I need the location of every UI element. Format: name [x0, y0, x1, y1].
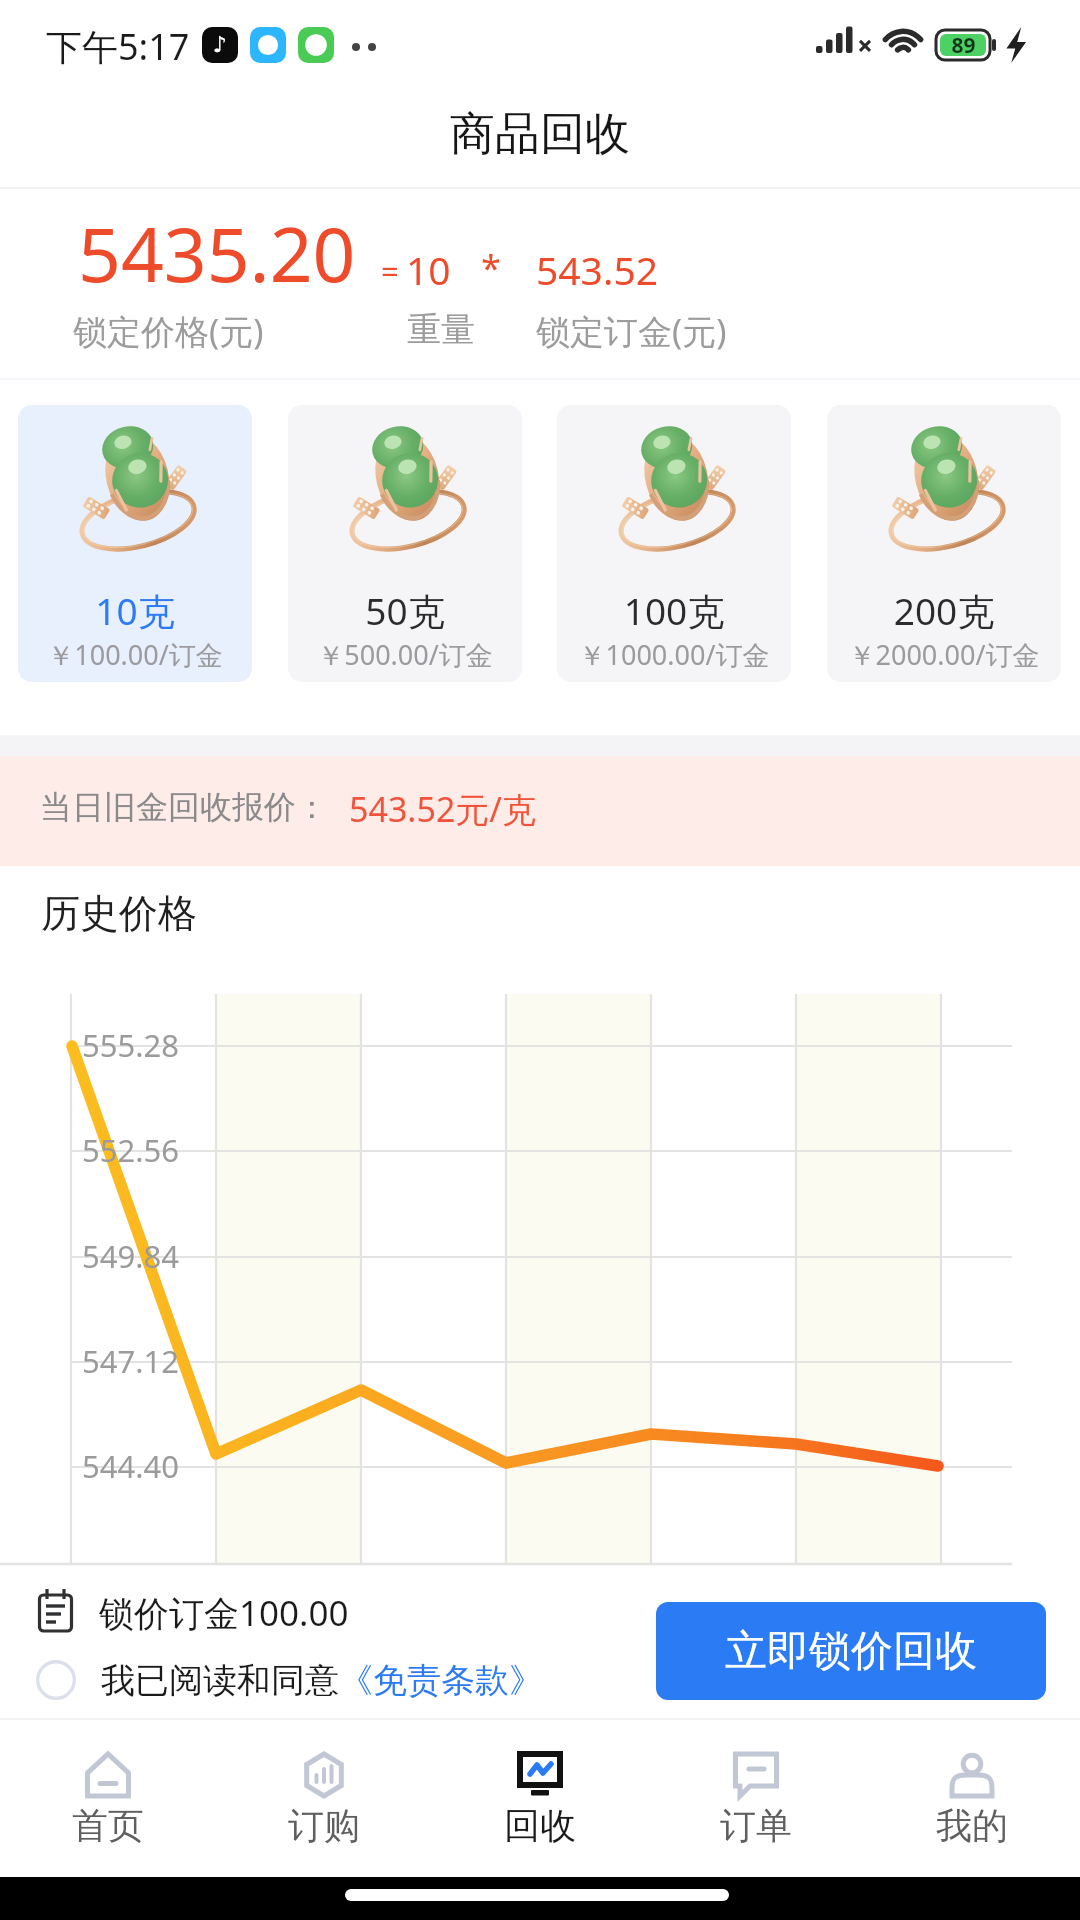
button[interactable]: 100克: [557, 405, 791, 682]
staticText: 552.56: [82, 1129, 179, 1171]
staticText: 547.12: [82, 1340, 179, 1382]
staticText: =: [381, 250, 399, 292]
staticText: *: [481, 243, 501, 292]
staticText: 我已阅读和同意: [101, 1659, 339, 1702]
staticText: ￥100.00/订金: [18, 636, 252, 673]
staticText: 549.84: [82, 1235, 179, 1277]
staticText: 543.52元/克: [349, 786, 536, 832]
staticText: 89: [951, 31, 976, 60]
staticText: ￥500.00/订金: [288, 636, 522, 673]
staticText: 重量: [407, 308, 475, 351]
button[interactable]: 首页: [0, 1720, 216, 1877]
staticText: 我的: [936, 1803, 1008, 1848]
staticText: 543.52: [536, 243, 658, 296]
staticText: 10克: [18, 585, 252, 636]
button[interactable]: 10克: [18, 405, 252, 682]
staticText: 544.40: [82, 1445, 179, 1487]
button[interactable]: 回收: [432, 1720, 648, 1877]
staticText: 订单: [720, 1803, 792, 1848]
staticText: 5435.20: [78, 202, 356, 304]
staticText: 商品回收: [450, 106, 630, 163]
staticText: 回收: [504, 1803, 576, 1848]
staticText: 《免责条款》: [339, 1659, 543, 1702]
staticText: ￥2000.00/订金: [827, 636, 1061, 673]
staticText: 当日旧金回收报价：: [40, 787, 328, 827]
button[interactable]: 订购: [216, 1720, 432, 1877]
staticText: 订购: [288, 1803, 360, 1848]
staticText: 555.28: [82, 1024, 179, 1066]
staticText: 锁定价格(元): [73, 308, 264, 354]
button[interactable]: 订单: [648, 1720, 864, 1877]
staticText: 100克: [557, 585, 791, 636]
button[interactable]: 50克: [288, 405, 522, 682]
staticText: ♪: [213, 32, 228, 58]
staticText: 锁价订金100.00: [99, 1589, 349, 1637]
button[interactable]: 我已阅读和同意《免责条款》: [36, 1654, 543, 1706]
button[interactable]: 立即锁价回收: [656, 1602, 1046, 1700]
staticText: 10: [406, 243, 451, 296]
staticText: 历史价格: [41, 889, 197, 938]
button[interactable]: 200克: [827, 405, 1061, 682]
staticText: 下午5:17: [46, 22, 190, 68]
button[interactable]: 我的: [864, 1720, 1080, 1877]
staticText: 200克: [827, 585, 1061, 636]
staticText: 50克: [288, 585, 522, 636]
staticText: 锁定订金(元): [536, 308, 727, 354]
staticText: ￥1000.00/订金: [557, 636, 791, 673]
staticText: 立即锁价回收: [725, 1625, 977, 1678]
staticText: 首页: [72, 1803, 144, 1848]
